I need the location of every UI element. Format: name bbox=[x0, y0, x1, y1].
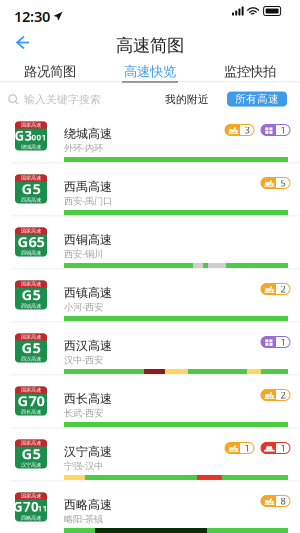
staticText: 西铜高速 bbox=[64, 232, 112, 247]
staticText: 小河-西安 bbox=[64, 300, 103, 313]
button[interactable]: 国家高速 bbox=[0, 163, 300, 216]
staticText: 国家高速 bbox=[21, 281, 41, 287]
staticText: G70 bbox=[13, 498, 39, 515]
staticText: 国家高速 bbox=[21, 122, 41, 128]
staticText: 西镇高速 bbox=[21, 303, 41, 309]
staticText: G5 bbox=[21, 179, 40, 198]
staticText: 西禹高速 bbox=[64, 179, 112, 194]
staticText: 5 bbox=[280, 177, 285, 189]
staticText: 西略高速 bbox=[21, 515, 41, 521]
staticText: 2 bbox=[280, 283, 285, 295]
staticText: 2 bbox=[280, 389, 285, 401]
staticText: 西长高速 bbox=[64, 391, 112, 406]
staticText: 西安-禹门口 bbox=[64, 194, 112, 207]
button[interactable]: 国家高速 bbox=[0, 322, 300, 375]
staticText: 11 bbox=[37, 503, 47, 514]
staticText: 1 bbox=[280, 124, 285, 136]
staticText: G70 bbox=[17, 391, 44, 410]
staticText: 外环-内环 bbox=[64, 141, 103, 154]
staticText: 西铜高速 bbox=[21, 250, 41, 256]
staticText: 西镇高速 bbox=[64, 285, 112, 300]
staticText: 汉中-西安 bbox=[64, 353, 103, 366]
staticText: 001 bbox=[31, 132, 46, 143]
staticText: 西禹高速 bbox=[21, 197, 41, 203]
staticText: 8 bbox=[280, 495, 285, 507]
staticText: G65 bbox=[17, 232, 44, 251]
staticText: 我的附近 bbox=[165, 93, 209, 106]
staticText: 路况简图 bbox=[24, 63, 76, 80]
button[interactable]: 国家高速 bbox=[0, 216, 300, 269]
button[interactable]: 国家高速 bbox=[0, 428, 300, 481]
staticText: G3 bbox=[14, 127, 32, 144]
button[interactable]: 输入关键字搜索 bbox=[8, 89, 148, 109]
staticText: 1 bbox=[280, 336, 285, 348]
staticText: 绕城高速 bbox=[64, 126, 112, 141]
button[interactable]: 国家高速 bbox=[0, 481, 300, 533]
staticText: 国家高速 bbox=[21, 334, 41, 340]
staticText: 汉宁高速 bbox=[21, 462, 41, 468]
staticText: 西略高速 bbox=[64, 497, 112, 512]
staticText: 西安-铜川 bbox=[64, 247, 103, 260]
staticText: 长武-西安 bbox=[64, 406, 103, 419]
staticText: G5 bbox=[21, 444, 40, 463]
staticText: 高速简图 bbox=[116, 35, 184, 56]
staticText: 宁强-汉中 bbox=[64, 459, 103, 472]
staticText: 西汉高速 bbox=[64, 338, 112, 353]
staticText: G5 bbox=[21, 285, 40, 304]
staticText: 西长高速 bbox=[21, 409, 41, 415]
staticText: 西汉高速 bbox=[21, 356, 41, 362]
button[interactable]: 国家高速 bbox=[0, 269, 300, 322]
staticText: 所有高速 bbox=[235, 92, 279, 105]
staticText: 3 bbox=[244, 124, 249, 136]
staticText: 输入关键字搜索 bbox=[24, 93, 101, 106]
staticText: 1 bbox=[280, 442, 285, 454]
button[interactable]: 监控快拍 bbox=[200, 60, 300, 82]
staticText: 1 bbox=[244, 442, 249, 454]
staticText: 略阳-茶镇 bbox=[64, 512, 103, 525]
button[interactable]: 所有高速 bbox=[227, 91, 287, 106]
button[interactable]: 国家高速 bbox=[0, 375, 300, 428]
button[interactable]: 国家高速 bbox=[0, 110, 300, 163]
staticText: 高速快览 bbox=[124, 63, 176, 80]
staticText: 绕城高速 bbox=[21, 144, 41, 150]
staticText: 国家高速 bbox=[21, 440, 41, 446]
staticText: 国家高速 bbox=[21, 228, 41, 234]
staticText: 12:30 bbox=[14, 6, 50, 26]
button[interactable]: 返回 bbox=[7, 30, 39, 54]
staticText: 国家高速 bbox=[21, 175, 41, 181]
button[interactable]: 路况简图 bbox=[0, 60, 100, 82]
button[interactable]: 高速快览 bbox=[100, 60, 200, 82]
staticText: 监控快拍 bbox=[224, 63, 276, 80]
staticText: 汉宁高速 bbox=[64, 444, 112, 459]
staticText: G5 bbox=[21, 338, 40, 357]
staticText: 国家高速 bbox=[21, 387, 41, 393]
staticText: 国家高速 bbox=[21, 493, 41, 499]
button[interactable]: 我的附近 bbox=[158, 89, 216, 109]
